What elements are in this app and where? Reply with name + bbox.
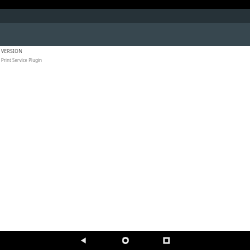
button[interactable]: Home	[115, 231, 135, 250]
staticText: VERSION	[1, 48, 23, 55]
button[interactable]: VERSION	[0, 46, 250, 65]
staticText: Print Service Plugin	[1, 57, 42, 63]
button[interactable]: Back	[73, 231, 93, 250]
button[interactable]: Recent apps	[156, 231, 176, 250]
